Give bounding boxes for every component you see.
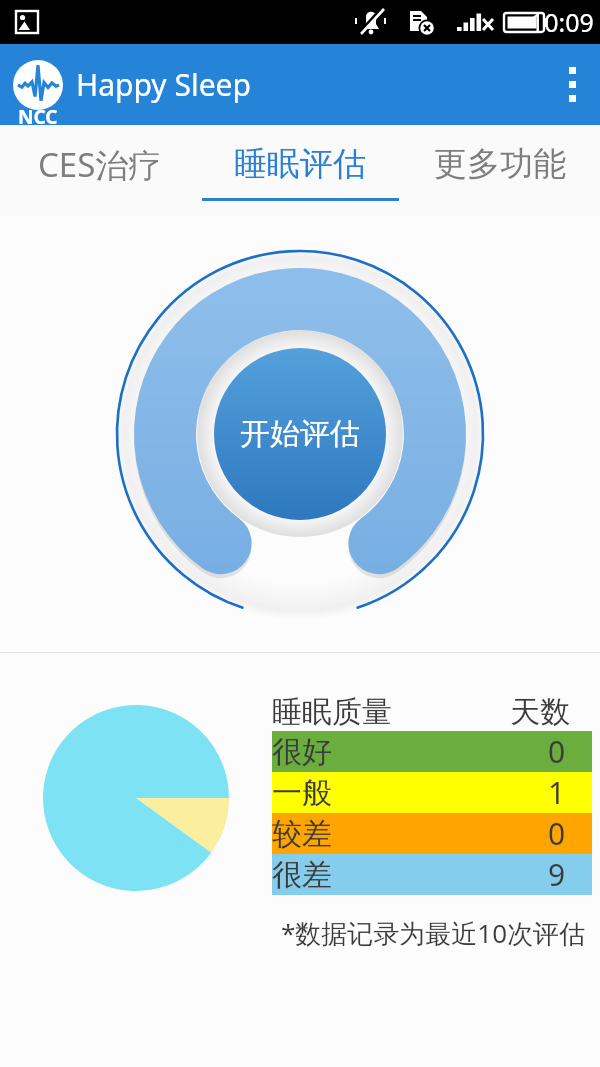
button[interactable]: 更多功能 (400, 125, 600, 215)
button[interactable]: CES治疗 (0, 125, 200, 215)
staticText: 10:09 (530, 5, 594, 39)
staticText: 睡眠质量 (272, 693, 510, 731)
staticText: Happy Sleep (76, 64, 251, 105)
staticText: NCC (18, 104, 58, 130)
staticText: 一般 (272, 774, 548, 812)
staticText: 睡眠评估 (234, 143, 366, 185)
button[interactable]: More options (544, 44, 600, 125)
staticText: 9 (548, 854, 566, 895)
staticText: 0 (548, 813, 566, 854)
staticText: 开始评估 (240, 415, 360, 453)
staticText: CES治疗 (38, 142, 162, 187)
staticText: 很差 (272, 856, 548, 894)
staticText: 0 (548, 731, 566, 772)
staticText: 很好 (272, 733, 548, 771)
staticText: 更多功能 (434, 143, 566, 185)
staticText: 天数 (510, 693, 570, 731)
staticText: *数据记录为最近10次评估 (281, 915, 586, 951)
button[interactable]: 睡眠评估 (200, 125, 400, 215)
staticText: 1 (548, 772, 566, 813)
button[interactable]: 开始评估 (214, 348, 386, 520)
staticText: 较差 (272, 815, 548, 853)
